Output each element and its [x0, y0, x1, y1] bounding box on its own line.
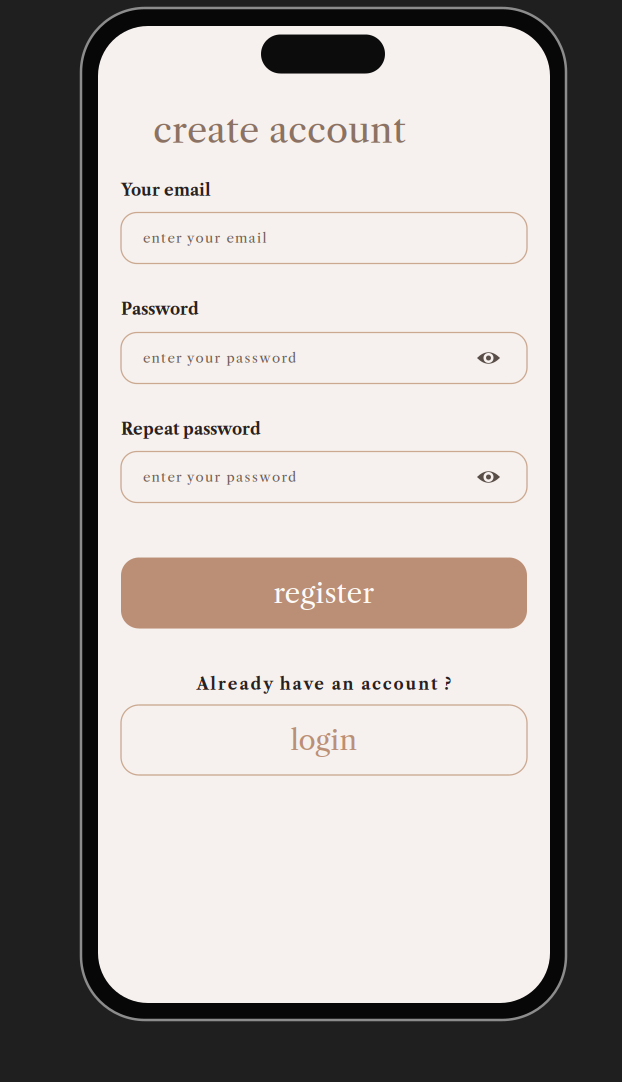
- button[interactable]: enter your password: [121, 451, 527, 502]
- staticText: enter your email: [143, 230, 266, 246]
- button[interactable]: register: [121, 557, 527, 628]
- button[interactable]: enter your email: [121, 212, 527, 263]
- staticText: Password: [121, 299, 199, 319]
- staticText: enter your password: [143, 469, 296, 485]
- staticText: Already have an account ?: [196, 674, 452, 694]
- staticText: Repeat password: [121, 419, 261, 439]
- staticText: enter your password: [143, 350, 296, 366]
- staticText: Your email: [121, 180, 211, 200]
- staticText: register: [273, 576, 374, 610]
- button[interactable]: login: [121, 705, 527, 775]
- staticText: create account: [153, 108, 406, 152]
- staticText: login: [290, 723, 357, 757]
- button[interactable]: enter your password: [121, 332, 527, 383]
